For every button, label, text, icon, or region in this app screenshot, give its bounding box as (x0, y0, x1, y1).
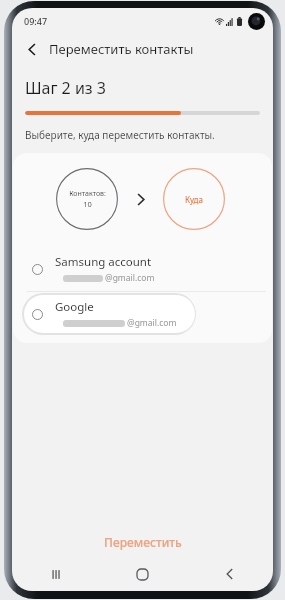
staticText: Контактов: (69, 189, 106, 199)
button[interactable]: Куда (163, 168, 225, 230)
button[interactable]: Home (99, 559, 186, 589)
staticText: Куда (185, 194, 203, 205)
button[interactable]: Переместить (12, 525, 273, 559)
button[interactable]: Recent apps (12, 559, 99, 589)
staticText: 10 (83, 199, 92, 209)
staticText: Шаг 2 из 3 (25, 77, 106, 99)
staticText: Переместить контакты (49, 40, 194, 58)
button[interactable]: Google (13, 292, 272, 336)
button[interactable]: Back (22, 39, 42, 59)
staticText: @gmail.com (127, 317, 177, 329)
button[interactable]: Samsung account (13, 247, 272, 291)
button[interactable]: Back (12, 34, 273, 64)
staticText: Samsung account (55, 254, 152, 270)
staticText: Выберите, куда переместить контакты. (25, 128, 215, 142)
button[interactable]: Back (186, 559, 273, 589)
staticText: Переместить (104, 534, 182, 550)
staticText: Google (55, 299, 94, 315)
staticText: 09:47 (24, 15, 48, 27)
staticText: @gmail.com (105, 272, 155, 284)
